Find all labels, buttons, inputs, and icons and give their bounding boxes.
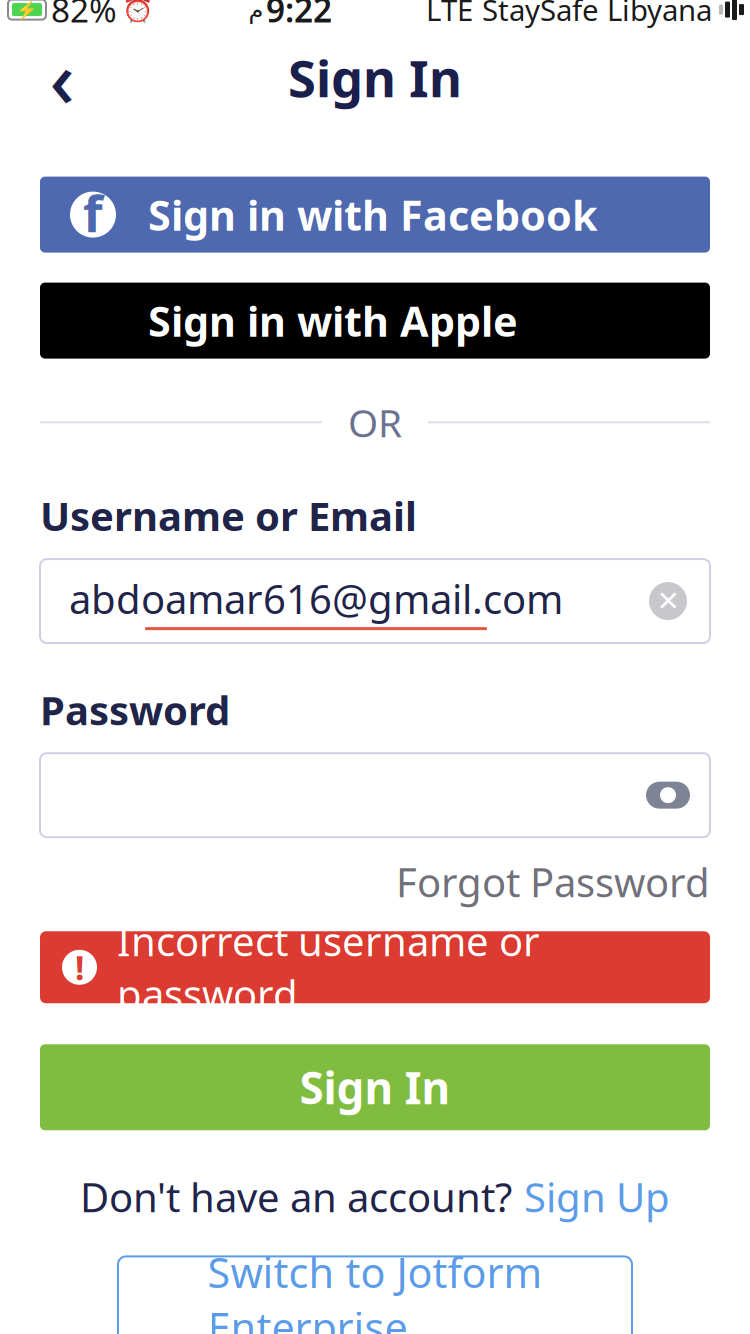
staticText: OR	[348, 397, 402, 448]
staticText: Forgot Password	[396, 855, 710, 908]
staticText: 82%	[51, 0, 117, 32]
staticText: f	[83, 179, 103, 246]
staticText: Sign In	[288, 44, 462, 111]
staticText: Incorrect username or password.	[117, 914, 540, 1020]
button[interactable]: Sign In	[40, 1044, 710, 1130]
staticText: ‹	[49, 26, 74, 129]
staticText: !	[75, 945, 84, 989]
button[interactable]: Show password	[640, 769, 696, 821]
button[interactable]: f	[40, 177, 710, 253]
button[interactable]: Sign Up	[512, 1170, 670, 1223]
button[interactable]: Switch to Jotform Enterprise	[118, 1256, 632, 1334]
button[interactable]	[40, 283, 710, 359]
staticText: LTE	[426, 0, 473, 29]
button[interactable]: Back	[30, 46, 94, 110]
staticText: م	[248, 0, 263, 23]
staticText: Sign In	[299, 1058, 450, 1116]
staticText: Username or Email	[40, 489, 417, 542]
staticText: Don't have an account?	[80, 1170, 512, 1223]
staticText: StaySafe Libyana	[482, 0, 712, 29]
staticText: Sign Up	[524, 1170, 670, 1223]
staticText: abdoamar616@gmail.com	[69, 572, 563, 625]
staticText: 9:22	[266, 0, 332, 32]
staticText: Sign in with Facebook	[148, 187, 598, 242]
button[interactable]: Clear text	[642, 575, 694, 627]
staticText: ⚡	[16, 0, 38, 19]
staticText: ⏰	[122, 0, 154, 24]
staticText: Switch to Jotform Enterprise	[207, 1244, 542, 1334]
staticText: ✕	[656, 585, 679, 617]
button[interactable]: Forgot Password	[396, 849, 710, 914]
staticText: Sign in with Apple	[148, 293, 518, 348]
staticText: Password	[40, 683, 230, 736]
